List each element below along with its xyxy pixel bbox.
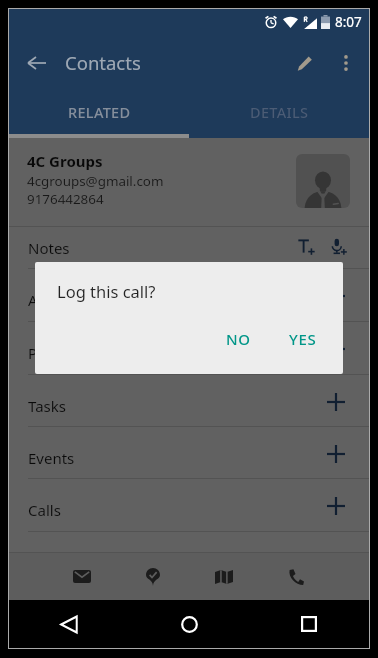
button[interactable]: Add text note bbox=[293, 233, 319, 259]
button[interactable]: Add Events bbox=[325, 443, 347, 465]
button[interactable]: Add Tasks bbox=[325, 391, 347, 413]
button[interactable]: Call bbox=[260, 553, 332, 600]
staticText: Log this call? bbox=[57, 280, 156, 302]
button[interactable]: Back bbox=[17, 43, 57, 83]
staticText: 4cgroups@gmail.com bbox=[27, 172, 164, 190]
button[interactable]: YES bbox=[281, 325, 325, 353]
staticText: NO bbox=[226, 329, 251, 349]
button[interactable]: Add Projects bbox=[325, 338, 347, 360]
staticText: Addresses bbox=[28, 290, 101, 310]
staticText: RELATED bbox=[68, 102, 131, 122]
staticText: YES bbox=[289, 329, 317, 349]
button[interactable]: Calls bbox=[9, 479, 369, 531]
staticText: Contacts bbox=[65, 50, 141, 75]
button[interactable]: DETAILS bbox=[189, 90, 369, 134]
button[interactable]: Notes bbox=[9, 227, 369, 268]
button[interactable]: Projects bbox=[9, 322, 369, 374]
staticText: Projects bbox=[28, 343, 85, 363]
button[interactable]: RELATED bbox=[9, 90, 189, 134]
button[interactable]: Home bbox=[129, 600, 249, 648]
button[interactable]: Tasks bbox=[9, 375, 369, 426]
button[interactable]: Add voice note bbox=[325, 233, 351, 259]
staticText: Events bbox=[28, 448, 75, 468]
button[interactable]: More options bbox=[329, 46, 363, 80]
button[interactable]: Map bbox=[188, 553, 260, 600]
button[interactable]: Contact photo bbox=[296, 154, 350, 208]
staticText: 9176442864 bbox=[27, 190, 104, 208]
staticText: DETAILS bbox=[250, 102, 309, 122]
staticText: 8:07 bbox=[335, 13, 362, 31]
button[interactable]: Events bbox=[9, 427, 369, 478]
button[interactable]: Email bbox=[46, 553, 117, 600]
button[interactable]: Edit bbox=[282, 41, 326, 85]
button[interactable]: 4C Groups bbox=[9, 138, 369, 226]
button[interactable]: Add Addresses bbox=[325, 285, 347, 307]
staticText: Calls bbox=[28, 500, 61, 520]
button[interactable]: Addresses bbox=[9, 269, 369, 321]
button[interactable]: NO bbox=[218, 325, 259, 353]
button[interactable]: Recents bbox=[249, 600, 369, 648]
staticText: 4C Groups bbox=[27, 151, 103, 171]
staticText: Tasks bbox=[28, 396, 66, 416]
button[interactable]: Add Calls bbox=[325, 495, 347, 517]
staticText: Notes bbox=[28, 238, 70, 258]
button[interactable]: Back bbox=[9, 600, 129, 648]
button[interactable]: Location bbox=[117, 553, 188, 600]
